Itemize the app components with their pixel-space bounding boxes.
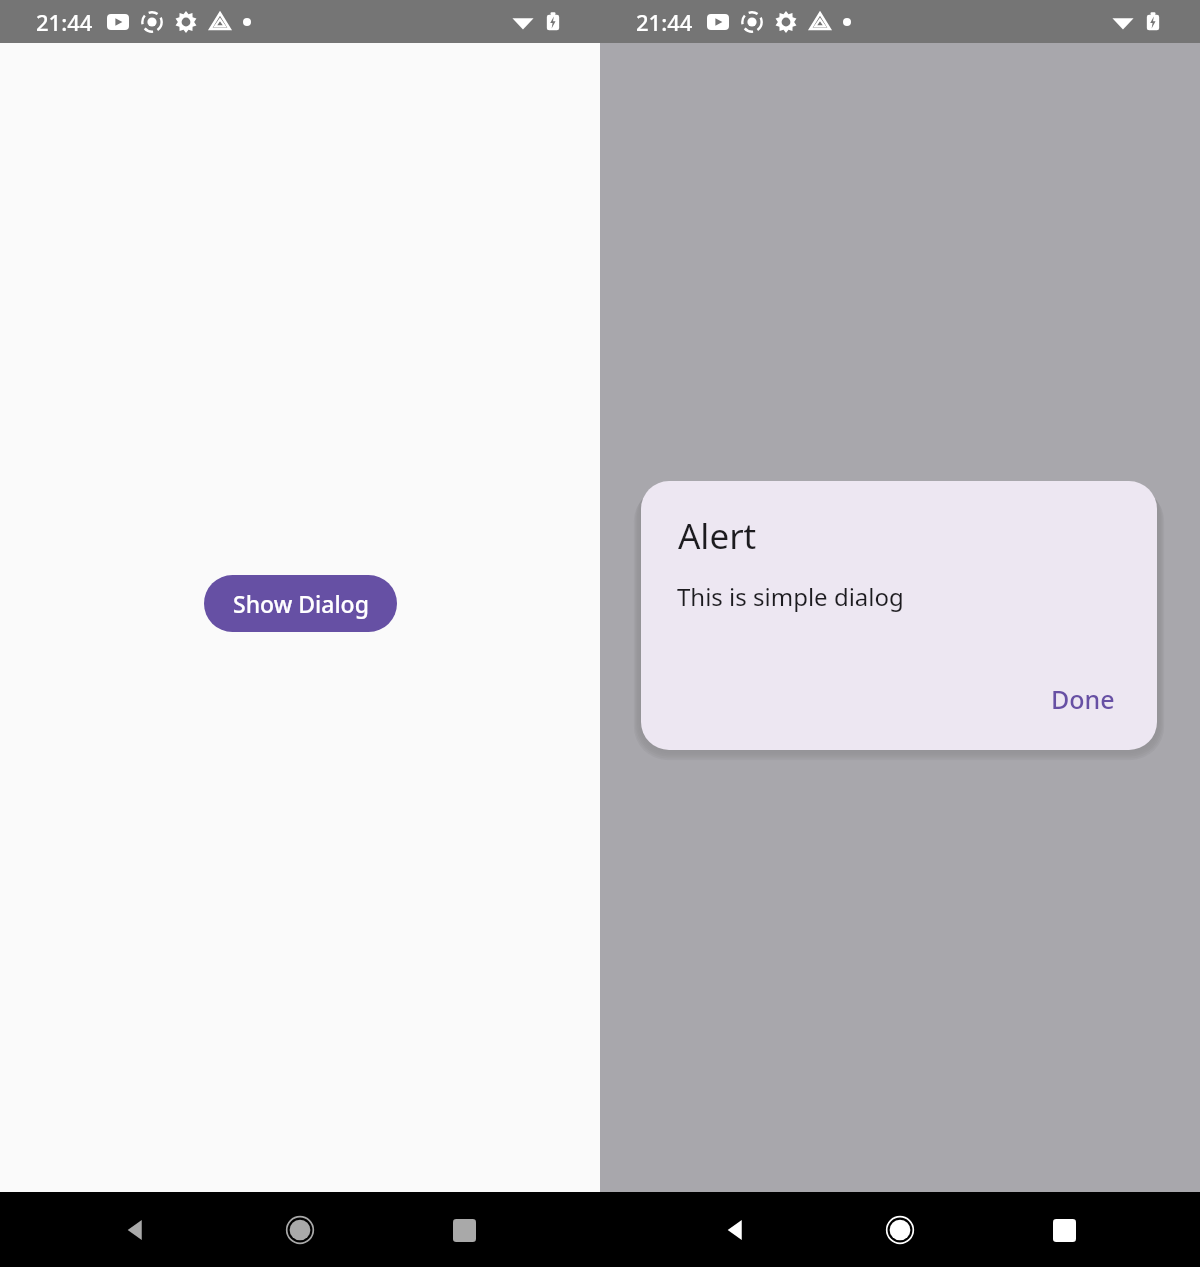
staticText: This is simple dialog	[677, 580, 904, 613]
button[interactable]: Home	[872, 1202, 928, 1258]
button[interactable]: Home	[272, 1202, 328, 1258]
button[interactable]: Back	[108, 1202, 164, 1258]
button[interactable]: Recent apps	[436, 1202, 492, 1258]
staticText: Show Dialog	[233, 588, 369, 619]
staticText: Done	[1051, 682, 1115, 716]
button[interactable]: Show Dialog	[204, 575, 397, 632]
staticText: 21:44	[36, 7, 93, 37]
button[interactable]: Back	[708, 1202, 764, 1258]
button[interactable]: Recent apps	[1036, 1202, 1092, 1258]
staticText: 21:44	[636, 7, 693, 37]
staticText: Alert	[678, 512, 757, 560]
button[interactable]: Done	[1035, 674, 1131, 724]
